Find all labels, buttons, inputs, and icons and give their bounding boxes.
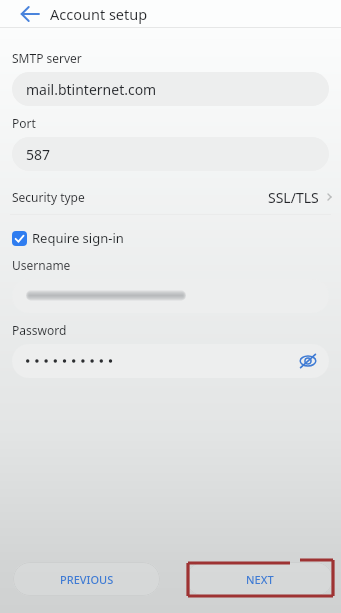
staticText: Require sign-in bbox=[32, 229, 124, 247]
button[interactable]: 587 bbox=[12, 137, 329, 171]
staticText: SSL/TLS bbox=[268, 188, 319, 207]
button[interactable]: Show password bbox=[295, 348, 321, 374]
button[interactable]: Require sign-in bbox=[12, 227, 124, 249]
button[interactable]: NEXT bbox=[186, 562, 333, 596]
staticText: 587 bbox=[26, 145, 51, 164]
staticText: Port bbox=[12, 115, 36, 131]
button[interactable]: Show password bbox=[12, 344, 329, 378]
staticText: SMTP server bbox=[12, 50, 82, 66]
staticText: Security type bbox=[12, 189, 85, 205]
button[interactable] bbox=[12, 279, 329, 313]
button[interactable]: Back bbox=[14, 0, 46, 28]
button[interactable]: Security type bbox=[0, 184, 341, 210]
staticText: Password bbox=[12, 322, 67, 338]
staticText: PREVIOUS bbox=[60, 572, 114, 587]
button[interactable]: PREVIOUS bbox=[13, 562, 160, 596]
staticText: Account setup bbox=[50, 4, 148, 24]
staticText: mail.btinternet.com bbox=[26, 80, 157, 99]
button[interactable]: mail.btinternet.com bbox=[12, 72, 329, 106]
staticText: Username bbox=[12, 257, 71, 273]
staticText: NEXT bbox=[246, 572, 274, 587]
